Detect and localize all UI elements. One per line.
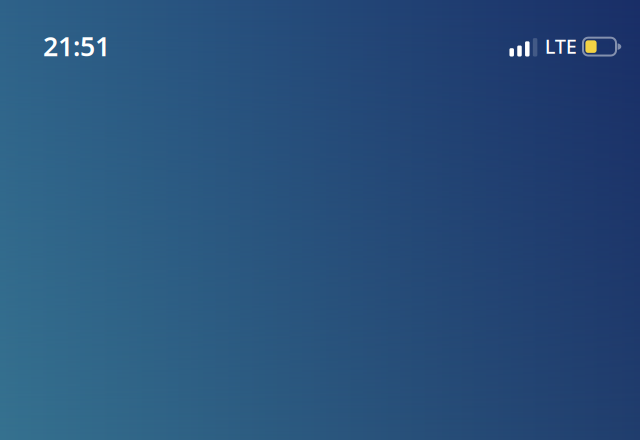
staticText: LTE [545, 33, 577, 59]
staticText: 21:51 [43, 28, 110, 64]
